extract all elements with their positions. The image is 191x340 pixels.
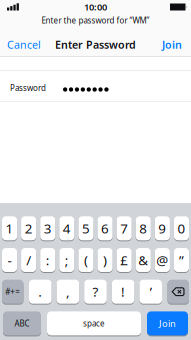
- staticText: 3: [44, 219, 52, 237]
- staticText: 7: [120, 219, 128, 237]
- staticText: ): [103, 251, 107, 269]
- staticText: 0: [177, 219, 185, 237]
- staticText: 8: [139, 219, 147, 237]
- button[interactable]: ,: [57, 280, 79, 304]
- staticText: £: [120, 251, 128, 269]
- button[interactable]: Password: [0, 71, 191, 101]
- button[interactable]: :: [40, 248, 55, 272]
- staticText: ’: [150, 283, 152, 300]
- button[interactable]: 8: [136, 216, 151, 240]
- button[interactable]: Join: [162, 38, 191, 52]
- button[interactable]: Join: [147, 311, 188, 335]
- staticText: 10:00: [84, 1, 107, 13]
- button[interactable]: &: [136, 248, 151, 272]
- button[interactable]: 7: [117, 216, 132, 240]
- button[interactable]: Cancel: [0, 38, 41, 52]
- staticText: Join: [159, 317, 176, 330]
- staticText: .: [38, 283, 42, 300]
- button[interactable]: @: [155, 248, 170, 272]
- staticText: 9: [158, 219, 166, 237]
- button[interactable]: ?: [84, 280, 107, 304]
- staticText: (: [84, 251, 88, 269]
- button[interactable]: 3: [40, 216, 55, 240]
- staticText: ”: [179, 251, 184, 269]
- staticText: space: [83, 318, 105, 329]
- button[interactable]: ): [97, 248, 113, 272]
- staticText: 4: [63, 219, 71, 237]
- staticText: Password: [10, 83, 46, 93]
- button[interactable]: -: [2, 248, 17, 272]
- staticText: @: [156, 251, 168, 269]
- staticText: Enter the password for “WM”: [41, 15, 149, 26]
- staticText: ;: [65, 251, 69, 269]
- button[interactable]: (: [78, 248, 93, 272]
- button[interactable]: 9: [155, 216, 170, 240]
- button[interactable]: 0: [174, 216, 189, 240]
- button[interactable]: £: [117, 248, 132, 272]
- staticText: 2: [25, 219, 33, 237]
- button[interactable]: !: [112, 280, 134, 304]
- button[interactable]: Delete: [167, 280, 189, 304]
- staticText: /: [26, 251, 31, 269]
- staticText: 5: [82, 219, 90, 237]
- button[interactable]: ;: [59, 248, 74, 272]
- button[interactable]: space: [47, 311, 141, 335]
- staticText: &: [138, 251, 148, 269]
- staticText: ,: [66, 283, 70, 300]
- button[interactable]: 2: [21, 216, 36, 240]
- button[interactable]: 4: [59, 216, 74, 240]
- button[interactable]: 1: [2, 216, 17, 240]
- staticText: ?: [92, 283, 98, 300]
- button[interactable]: .: [29, 280, 52, 304]
- staticText: 1: [6, 219, 14, 237]
- staticText: -: [8, 251, 12, 269]
- staticText: :: [46, 251, 50, 269]
- button[interactable]: 5: [78, 216, 93, 240]
- button[interactable]: #+=: [2, 280, 23, 304]
- staticText: 6: [101, 219, 109, 237]
- button[interactable]: 6: [97, 216, 113, 240]
- staticText: !: [121, 283, 125, 300]
- button[interactable]: /: [21, 248, 36, 272]
- staticText: ABC: [14, 318, 29, 329]
- button[interactable]: ”: [174, 248, 189, 272]
- staticText: #+=: [5, 286, 20, 297]
- staticText: Cancel: [7, 38, 41, 52]
- button[interactable]: ’: [139, 280, 162, 304]
- staticText: Enter Password: [55, 38, 136, 52]
- staticText: Join: [162, 38, 182, 52]
- button[interactable]: ABC: [3, 311, 41, 335]
